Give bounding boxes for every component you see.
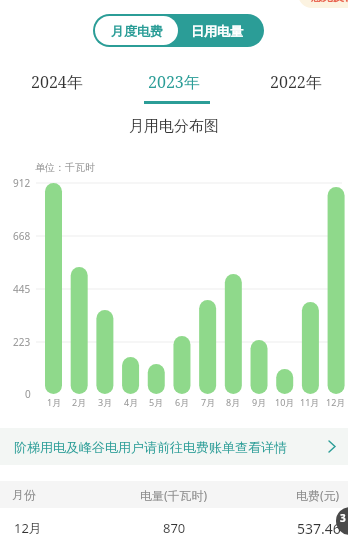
staticText: 668 <box>13 229 31 243</box>
staticText: 2023年 <box>148 71 200 93</box>
staticText: 3月 <box>98 396 113 408</box>
staticText: 4月 <box>124 396 139 408</box>
button[interactable]: 月度电费 <box>95 16 178 45</box>
staticText: 912 <box>13 176 31 190</box>
staticText: 12月 <box>14 519 42 537</box>
button[interactable]: 意见反馈 <box>298 0 348 8</box>
staticText: 意见反馈 <box>311 0 348 4</box>
staticText: 电费(元) <box>296 487 340 503</box>
staticText: 445 <box>13 282 31 296</box>
staticText: 5月 <box>149 396 164 408</box>
staticText: 537.46 <box>297 519 341 538</box>
staticText: 10月 <box>275 396 295 408</box>
staticText: 2月 <box>72 396 87 408</box>
staticText: 2024年 <box>31 71 83 93</box>
staticText: 223 <box>13 335 31 349</box>
button[interactable]: 2023年 <box>124 70 224 94</box>
button[interactable]: 12月 <box>0 508 348 548</box>
staticText: 电量(千瓦时) <box>140 487 208 503</box>
button[interactable]: 2022年 <box>246 70 346 94</box>
button[interactable]: 日用电量 <box>178 14 264 47</box>
staticText: 870 <box>163 519 186 537</box>
staticText: 1月 <box>47 396 62 408</box>
staticText: 9月 <box>252 396 267 408</box>
staticText: 月用电分布图 <box>129 117 219 136</box>
staticText: 8月 <box>226 396 241 408</box>
staticText: 11月 <box>300 396 320 408</box>
staticText: 单位：千瓦时 <box>35 161 95 174</box>
staticText: 月度电费 <box>111 23 163 39</box>
staticText: 3 <box>340 511 346 525</box>
staticText: 6月 <box>175 396 190 408</box>
button[interactable]: 3 <box>336 507 348 535</box>
staticText: 2022年 <box>270 71 322 93</box>
button[interactable]: 阶梯用电及峰谷电用户请前往电费账单查看详情 <box>0 428 348 465</box>
staticText: 阶梯用电及峰谷电用户请前往电费账单查看详情 <box>14 439 287 455</box>
staticText: 0 <box>25 387 31 401</box>
button[interactable]: 2024年 <box>7 70 107 94</box>
staticText: 12月 <box>326 396 346 408</box>
staticText: 月份 <box>12 487 36 502</box>
staticText: 日用电量 <box>191 23 243 39</box>
staticText: 7月 <box>201 396 216 408</box>
